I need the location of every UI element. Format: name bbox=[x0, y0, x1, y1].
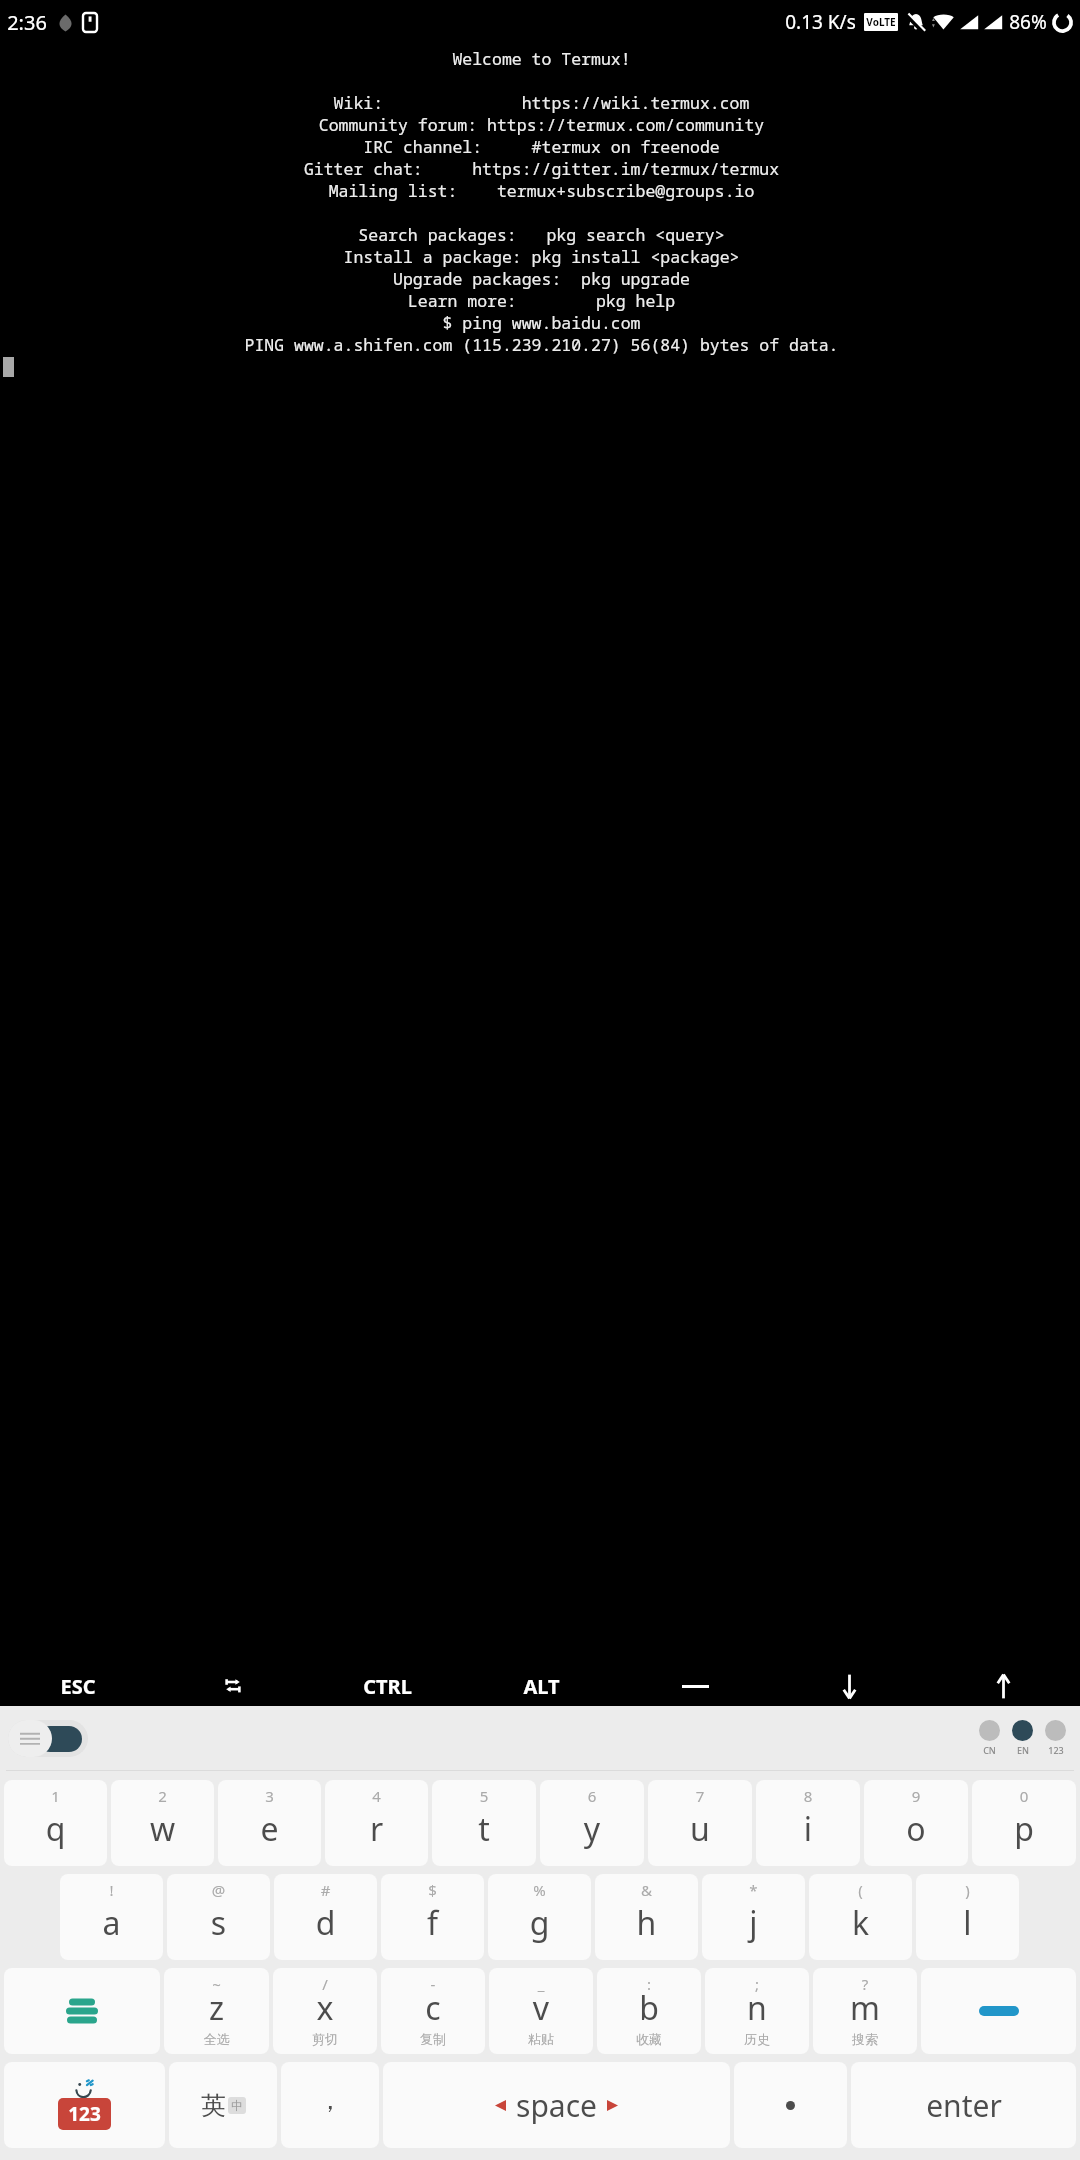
button[interactable]: CN bbox=[979, 1720, 1000, 1756]
staticText: Search packages: pkg search <query> bbox=[3, 223, 1080, 245]
staticText: f bbox=[381, 1901, 484, 1945]
staticText: l bbox=[916, 1901, 1019, 1945]
staticText: % bbox=[488, 1880, 591, 1900]
staticText: Upgrade packages: pkg upgrade bbox=[3, 267, 1080, 289]
button[interactable]: & bbox=[595, 1874, 698, 1960]
staticText: i bbox=[756, 1807, 860, 1851]
button[interactable]: 123 bbox=[1045, 1720, 1066, 1756]
staticText: - bbox=[381, 1974, 485, 1994]
button[interactable]: ~ bbox=[164, 1968, 269, 2054]
staticText: r bbox=[325, 1807, 428, 1851]
button[interactable]: space bbox=[383, 2062, 730, 2148]
staticText: 3 bbox=[218, 1786, 321, 1806]
staticText: 粘贴 bbox=[489, 2031, 593, 2047]
button[interactable]: Tab bbox=[155, 1666, 310, 1706]
staticText: * bbox=[702, 1880, 805, 1900]
button[interactable]: EN bbox=[1012, 1720, 1033, 1756]
staticText: g bbox=[488, 1901, 591, 1945]
staticText: Wiki: https://wiki.termux.com bbox=[3, 91, 1080, 113]
button[interactable]: : bbox=[597, 1968, 701, 2054]
button[interactable]: CTRL bbox=[310, 1666, 464, 1706]
button[interactable]: ) bbox=[916, 1874, 1019, 1960]
staticText: CTRL bbox=[363, 1673, 412, 1700]
button[interactable]: - bbox=[381, 1968, 485, 2054]
staticText: & bbox=[595, 1880, 698, 1900]
staticText: IRC channel: #termux on freenode bbox=[3, 135, 1080, 157]
button[interactable]: Arrow up bbox=[926, 1666, 1080, 1706]
staticText: t bbox=[432, 1807, 536, 1851]
staticText: 剪切 bbox=[273, 2031, 377, 2047]
staticText: 5 bbox=[432, 1786, 536, 1806]
button[interactable]: $ bbox=[381, 1874, 484, 1960]
button[interactable]: ( bbox=[809, 1874, 912, 1960]
staticText: 123 bbox=[68, 2101, 101, 2127]
staticText: y bbox=[540, 1807, 644, 1851]
staticText: 中 bbox=[231, 2098, 243, 2113]
staticText: 2 bbox=[111, 1786, 214, 1806]
staticText: m bbox=[813, 1986, 917, 2030]
button[interactable]: enter bbox=[851, 2062, 1076, 2148]
button[interactable]: 5 bbox=[432, 1780, 536, 1866]
button[interactable]: 0 bbox=[972, 1780, 1076, 1866]
staticText: 0 bbox=[972, 1786, 1076, 1806]
button[interactable]: Minus bbox=[618, 1666, 772, 1706]
staticText: x bbox=[273, 1986, 377, 2030]
button[interactable] bbox=[734, 2062, 847, 2148]
button[interactable]: ALT bbox=[464, 1666, 618, 1706]
button[interactable]: ? bbox=[813, 1968, 917, 2054]
staticText: / bbox=[273, 1974, 377, 1994]
staticText: ~ bbox=[164, 1974, 269, 1994]
staticText: : bbox=[597, 1974, 701, 1994]
staticText: 1 bbox=[4, 1786, 107, 1806]
staticText: ; bbox=[705, 1974, 809, 1994]
staticText: n bbox=[705, 1986, 809, 2030]
staticText: $ bbox=[381, 1880, 484, 1900]
button[interactable]: 1 bbox=[4, 1780, 107, 1866]
staticText: 搜索 bbox=[813, 2031, 917, 2047]
staticText: ) bbox=[916, 1880, 1019, 1900]
staticText: 全选 bbox=[164, 2031, 269, 2047]
button[interactable]: 7 bbox=[648, 1780, 752, 1866]
staticText: @ bbox=[167, 1880, 270, 1900]
staticText: Mailing list: termux+subscribe@groups.io bbox=[3, 179, 1080, 201]
button[interactable]: 2 bbox=[111, 1780, 214, 1866]
button[interactable]: / bbox=[273, 1968, 377, 2054]
staticText: k bbox=[809, 1901, 912, 1945]
button[interactable]: * bbox=[702, 1874, 805, 1960]
staticText: 0.13 K/s bbox=[785, 9, 856, 35]
staticText: PING www.a.shifen.com (115.239.210.27) 5… bbox=[3, 333, 1080, 355]
button[interactable]: 6 bbox=[540, 1780, 644, 1866]
button[interactable]: Keyboard menu bbox=[8, 1720, 88, 1757]
staticText: w bbox=[111, 1807, 214, 1851]
button[interactable]: 9 bbox=[864, 1780, 968, 1866]
button[interactable]: ， bbox=[281, 2062, 379, 2148]
staticText: ， bbox=[317, 2084, 343, 2117]
staticText: h bbox=[595, 1901, 698, 1945]
button[interactable]: % bbox=[488, 1874, 591, 1960]
button[interactable]: Symbols and emoji bbox=[4, 2062, 165, 2148]
button[interactable]: ; bbox=[705, 1968, 809, 2054]
staticText: q bbox=[4, 1807, 107, 1851]
button[interactable]: ! bbox=[60, 1874, 163, 1960]
staticText: Install a package: pkg install <package> bbox=[3, 245, 1080, 267]
staticText: ( bbox=[809, 1880, 912, 1900]
button[interactable]: @ bbox=[167, 1874, 270, 1960]
button[interactable]: Arrow down bbox=[772, 1666, 926, 1706]
button[interactable]: 3 bbox=[218, 1780, 321, 1866]
button[interactable]: Backspace bbox=[921, 1968, 1076, 2054]
staticText: VoLTE bbox=[866, 15, 896, 29]
staticText: 9 bbox=[864, 1786, 968, 1806]
button[interactable]: Shift bbox=[4, 1968, 160, 2054]
staticText: _ bbox=[489, 1974, 593, 1994]
button[interactable]: 8 bbox=[756, 1780, 860, 1866]
button[interactable]: 英 bbox=[169, 2062, 277, 2148]
button[interactable]: ESC bbox=[0, 1666, 155, 1706]
button[interactable]: 4 bbox=[325, 1780, 428, 1866]
staticText: s bbox=[167, 1901, 270, 1945]
staticText: Learn more: pkg help bbox=[3, 289, 1080, 311]
staticText: ALT bbox=[523, 1673, 560, 1700]
button[interactable]: # bbox=[274, 1874, 377, 1960]
button[interactable]: _ bbox=[489, 1968, 593, 2054]
